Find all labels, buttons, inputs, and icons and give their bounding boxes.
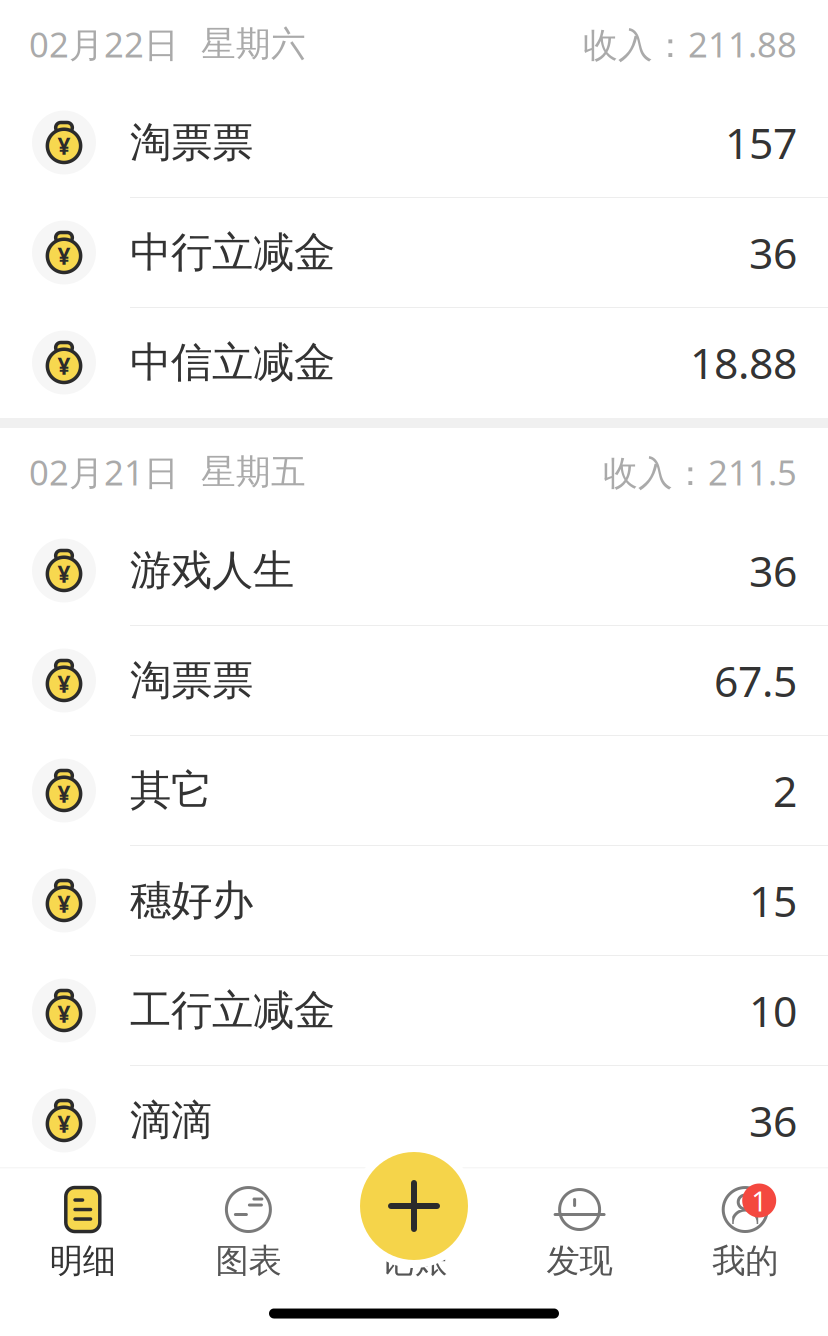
button[interactable]: ¥ bbox=[0, 516, 828, 626]
button[interactable]: ¥ bbox=[0, 88, 828, 198]
staticText: 中信立减金 bbox=[130, 337, 335, 388]
staticText: 记账 bbox=[381, 1240, 447, 1281]
button[interactable]: 明细 bbox=[0, 1172, 166, 1281]
staticText: 图表 bbox=[215, 1240, 281, 1281]
staticText: 淘票票 bbox=[130, 655, 253, 706]
button[interactable]: ¥ bbox=[0, 1066, 828, 1176]
staticText: 建行立减金 bbox=[130, 1315, 335, 1336]
staticText: 中行立减金 bbox=[130, 227, 335, 278]
staticText: 20 bbox=[749, 1202, 797, 1259]
button[interactable]: ¥ bbox=[0, 736, 828, 846]
staticText: 滴滴 bbox=[130, 1095, 212, 1146]
staticText: 星期五 bbox=[201, 451, 306, 493]
button[interactable]: 发现 bbox=[497, 1172, 662, 1281]
button[interactable]: ¥ bbox=[0, 198, 828, 308]
button[interactable]: 图表 bbox=[166, 1172, 331, 1281]
staticText: 明细 bbox=[50, 1240, 116, 1281]
staticText: 招商银行 bbox=[130, 1205, 294, 1256]
staticText: 星期六 bbox=[201, 23, 306, 65]
button[interactable]: ¥ bbox=[0, 626, 828, 736]
staticText: 36 bbox=[749, 1092, 797, 1149]
staticText: 穗好办 bbox=[130, 875, 253, 926]
staticText: 收入：211.5 bbox=[603, 449, 797, 495]
staticText: 10 bbox=[749, 982, 797, 1039]
staticText: ¥ bbox=[57, 131, 70, 161]
staticText: ¥ bbox=[57, 351, 70, 381]
staticText: 其它 bbox=[130, 765, 212, 816]
staticText: 2 bbox=[773, 762, 797, 819]
staticText: ¥ bbox=[57, 999, 70, 1029]
staticText: 我的 bbox=[712, 1240, 778, 1281]
staticText: 游戏人生 bbox=[130, 545, 294, 596]
button[interactable]: ¥ bbox=[0, 1286, 828, 1336]
staticText: 15 bbox=[749, 872, 797, 929]
button[interactable]: ¥ bbox=[0, 956, 828, 1066]
staticText: 1 bbox=[751, 1182, 767, 1219]
staticText: 36 bbox=[749, 224, 797, 281]
staticText: 收入：211.88 bbox=[583, 21, 797, 67]
button[interactable]: ¥ bbox=[0, 846, 828, 956]
staticText: 02月21日 bbox=[29, 449, 179, 495]
staticText: 淘票票 bbox=[130, 117, 253, 168]
staticText: ¥ bbox=[57, 1109, 70, 1139]
button[interactable]: 记账 bbox=[331, 1172, 497, 1281]
staticText: 02月22日 bbox=[29, 21, 179, 67]
staticText: 157 bbox=[725, 114, 797, 171]
staticText: ¥ bbox=[57, 779, 70, 809]
staticText: ¥ bbox=[57, 1219, 70, 1249]
staticText: ¥ bbox=[57, 669, 70, 699]
staticText: 67.5 bbox=[714, 652, 797, 709]
staticText: ¥ bbox=[57, 241, 70, 271]
staticText: 发现 bbox=[547, 1240, 613, 1281]
staticText: ¥ bbox=[57, 889, 70, 919]
button[interactable]: ¥ bbox=[0, 1176, 828, 1286]
staticText: 工行立减金 bbox=[130, 985, 335, 1036]
staticText: 36 bbox=[749, 542, 797, 599]
button[interactable]: 1 bbox=[662, 1172, 828, 1281]
button[interactable]: ¥ bbox=[0, 308, 828, 418]
staticText: ¥ bbox=[57, 559, 70, 589]
staticText: 18.88 bbox=[690, 334, 797, 391]
